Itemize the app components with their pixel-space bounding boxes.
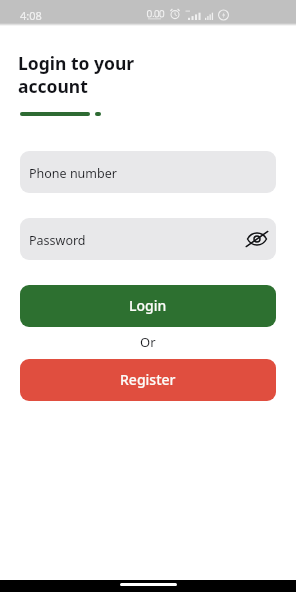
button[interactable]: Phone number — [20, 151, 276, 193]
staticText: Or — [140, 333, 156, 351]
button[interactable]: Register — [20, 359, 276, 401]
button[interactable]: Show password — [244, 226, 270, 252]
staticText: Phone number — [29, 165, 117, 182]
button[interactable]: Login — [20, 285, 276, 327]
staticText: Register — [120, 370, 176, 389]
staticText: Login to your account — [18, 51, 135, 98]
staticText: 4:08 — [20, 8, 42, 23]
staticText: Login — [129, 296, 167, 315]
staticText: Password — [29, 232, 86, 249]
button[interactable]: Password — [20, 218, 276, 260]
